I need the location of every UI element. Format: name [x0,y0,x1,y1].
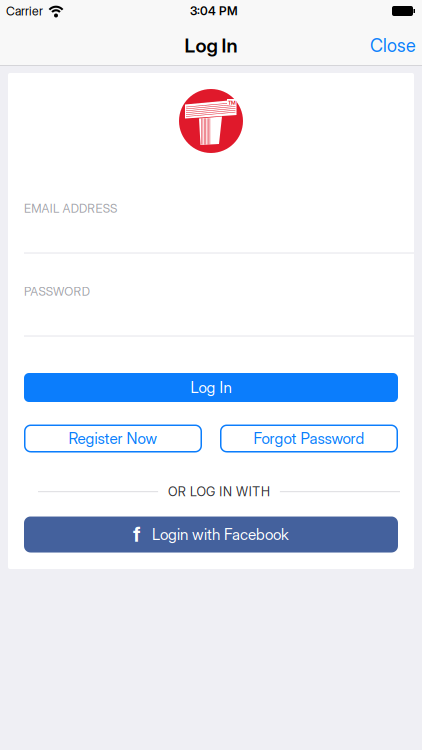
staticText: Login with Facebook [152,525,289,544]
button[interactable]: Log In [24,373,398,402]
staticText: EMAIL ADDRESS [24,201,117,215]
button[interactable]: Close [370,33,422,54]
staticText: Log In [190,378,231,397]
staticText: Carrier [6,4,43,18]
button[interactable]: EMAIL ADDRESS [8,201,414,253]
button[interactable]: Forgot Password [220,424,398,452]
staticText: Log In [184,34,237,57]
staticText: 3:04 PM [190,4,238,18]
staticText: TM [228,99,236,106]
staticText: Forgot Password [253,429,364,448]
button[interactable]: f [24,516,398,552]
button[interactable]: PASSWORD [8,284,414,336]
staticText: PASSWORD [24,284,90,298]
staticText: Register Now [68,429,157,448]
staticText: Close [370,35,416,56]
staticText: f [133,522,140,547]
button[interactable]: Register Now [24,424,202,452]
staticText: OR LOG IN WITH [168,484,270,499]
